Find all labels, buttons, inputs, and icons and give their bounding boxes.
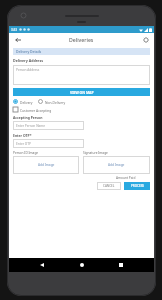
button[interactable]: Delivery (13, 99, 33, 104)
staticText: Delivery Details (16, 49, 42, 54)
staticText: Enter OTP (16, 142, 31, 146)
staticText: Non-Delivery (45, 100, 66, 104)
button[interactable]: Customer Accepting (13, 107, 52, 112)
staticText: Amount Paid (116, 176, 136, 180)
staticText: Person Address (16, 68, 40, 72)
button[interactable]: Add Image (83, 156, 150, 174)
button[interactable]: CANCEL (97, 182, 121, 190)
staticText: Signature Image (83, 151, 108, 155)
staticText: Enter OTP* (13, 133, 32, 138)
button[interactable]: Settings (141, 35, 150, 44)
button[interactable]: Recents (115, 259, 127, 271)
staticText: Delivery (20, 100, 33, 104)
button[interactable]: Person Address (13, 65, 150, 85)
staticText: Delivery Address (13, 58, 44, 63)
button[interactable]: Enter Person Name (13, 121, 84, 130)
staticText: Add Image (38, 163, 55, 167)
button[interactable]: PROCESS (124, 182, 150, 190)
button[interactable]: Add Image (13, 156, 79, 174)
button[interactable]: Back (36, 259, 48, 271)
staticText: Person ID Image (13, 151, 39, 155)
button[interactable]: VIEW ON MAP (13, 88, 150, 96)
staticText: CANCEL (103, 184, 115, 188)
staticText: Enter Person Name (16, 124, 46, 128)
staticText: Customer Accepting (20, 108, 52, 112)
button[interactable]: Back (13, 35, 22, 44)
button[interactable]: Non-Delivery (38, 99, 66, 104)
button[interactable]: Home (76, 259, 88, 271)
staticText: VIEW ON MAP (70, 90, 94, 95)
staticText: Add Image (108, 163, 125, 167)
staticText: Accepting Person (13, 115, 43, 120)
staticText: PROCESS (131, 184, 144, 188)
staticText: Deliveries (69, 36, 94, 43)
button[interactable]: Enter OTP (13, 139, 84, 148)
staticText: 3:33 (11, 28, 17, 32)
